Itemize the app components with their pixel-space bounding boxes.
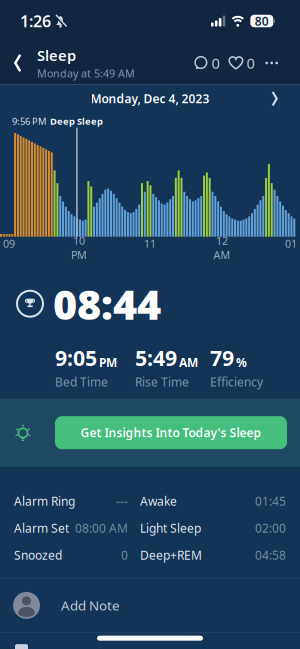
staticText: Get Insights Into Today's Sleep: [80, 425, 261, 441]
staticText: 1:26: [20, 10, 51, 32]
staticText: AM: [213, 248, 230, 262]
staticText: 0: [211, 53, 219, 73]
staticText: 79: [210, 344, 234, 372]
staticText: Add Note: [61, 596, 120, 614]
staticText: Sleep: [37, 46, 76, 65]
staticText: Snoozed: [14, 547, 62, 563]
staticText: 9:05: [55, 344, 97, 372]
staticText: 01: [285, 237, 297, 251]
staticText: Alarm Set: [14, 520, 69, 536]
staticText: AM: [179, 354, 198, 370]
staticText: PM: [71, 248, 87, 262]
staticText: 0: [121, 547, 128, 563]
staticText: Monday, Dec 4, 2023: [90, 91, 209, 107]
staticText: Efficiency: [210, 374, 263, 390]
staticText: PM: [99, 354, 117, 370]
staticText: Deep Sleep: [50, 115, 103, 127]
staticText: Monday at 5:49 AM: [37, 66, 135, 80]
staticText: 08:44: [53, 276, 161, 331]
staticText: 11: [144, 237, 156, 251]
staticText: Alarm Ring: [14, 493, 75, 509]
staticText: 9:56 PM: [12, 115, 46, 127]
staticText: 12: [216, 233, 228, 248]
staticText: Deep+REM: [140, 547, 202, 563]
button[interactable]: Monday, Dec 4, 2023: [0, 85, 300, 113]
staticText: Light Sleep: [140, 520, 201, 536]
button[interactable]: Comments: [193, 43, 219, 83]
button[interactable]: Likes: [228, 43, 254, 83]
staticText: 09: [3, 237, 15, 251]
staticText: 02:00: [255, 520, 286, 536]
staticText: 0: [246, 53, 254, 73]
staticText: Bed Time: [55, 374, 108, 390]
staticText: %: [236, 354, 247, 370]
staticText: 04:58: [255, 547, 286, 563]
staticText: Awake: [140, 493, 177, 509]
staticText: 10: [73, 233, 85, 248]
staticText: 80: [255, 13, 269, 29]
button[interactable]: More: [265, 50, 278, 76]
staticText: ---: [116, 493, 128, 509]
button[interactable]: Back: [0, 43, 37, 83]
staticText: Rise Time: [135, 374, 189, 390]
staticText: 01:45: [255, 493, 286, 509]
button[interactable]: Add Note: [0, 578, 300, 632]
button[interactable]: Get Insights Into Today's Sleep: [55, 416, 287, 449]
staticText: 08:00 AM: [75, 520, 128, 536]
staticText: 5:49: [135, 344, 177, 372]
